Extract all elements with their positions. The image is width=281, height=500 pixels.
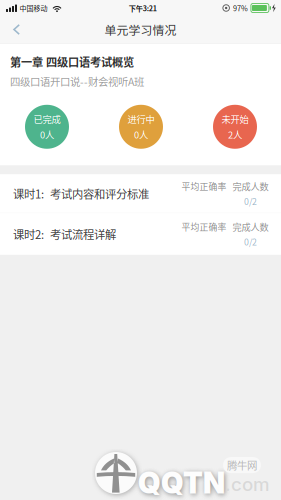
staticText: 0/2 xyxy=(244,235,257,248)
staticText: 第一章 四级口语考试概览 xyxy=(10,53,134,70)
staticText: 完成人数 xyxy=(232,179,268,193)
staticText: 课时2: 考试流程详解 xyxy=(13,226,116,242)
staticText: QQTN xyxy=(138,465,225,500)
staticText: 未开始 xyxy=(221,112,248,126)
staticText: 平均正确率 xyxy=(181,220,226,233)
staticText: 四级口语开口说--财会视听A班 xyxy=(10,74,144,89)
staticText: 单元学习情况 xyxy=(104,21,176,38)
button[interactable]: 课时1: 考试内容和评分标准 xyxy=(0,174,281,212)
staticText: 平均正确率 xyxy=(181,180,226,192)
staticText: 中国移动 xyxy=(19,3,47,13)
staticText: 0/2 xyxy=(244,195,257,207)
staticText: 0人 xyxy=(134,128,148,141)
staticText: 下午3:21 xyxy=(129,3,157,13)
staticText: 课时1: 考试内容和评分标准 xyxy=(13,185,149,202)
staticText: 进行中 xyxy=(127,112,154,126)
button[interactable]: Back xyxy=(0,17,32,42)
staticText: 完成人数 xyxy=(232,220,268,233)
staticText: 腾牛网 xyxy=(227,457,257,473)
staticText: 0人 xyxy=(40,128,54,141)
staticText: 已完成 xyxy=(33,112,60,126)
button[interactable]: 课时2: 考试流程详解 xyxy=(0,213,281,254)
staticText: 97% xyxy=(233,3,248,13)
staticText: .com xyxy=(225,473,270,496)
staticText: 2人 xyxy=(228,128,242,141)
